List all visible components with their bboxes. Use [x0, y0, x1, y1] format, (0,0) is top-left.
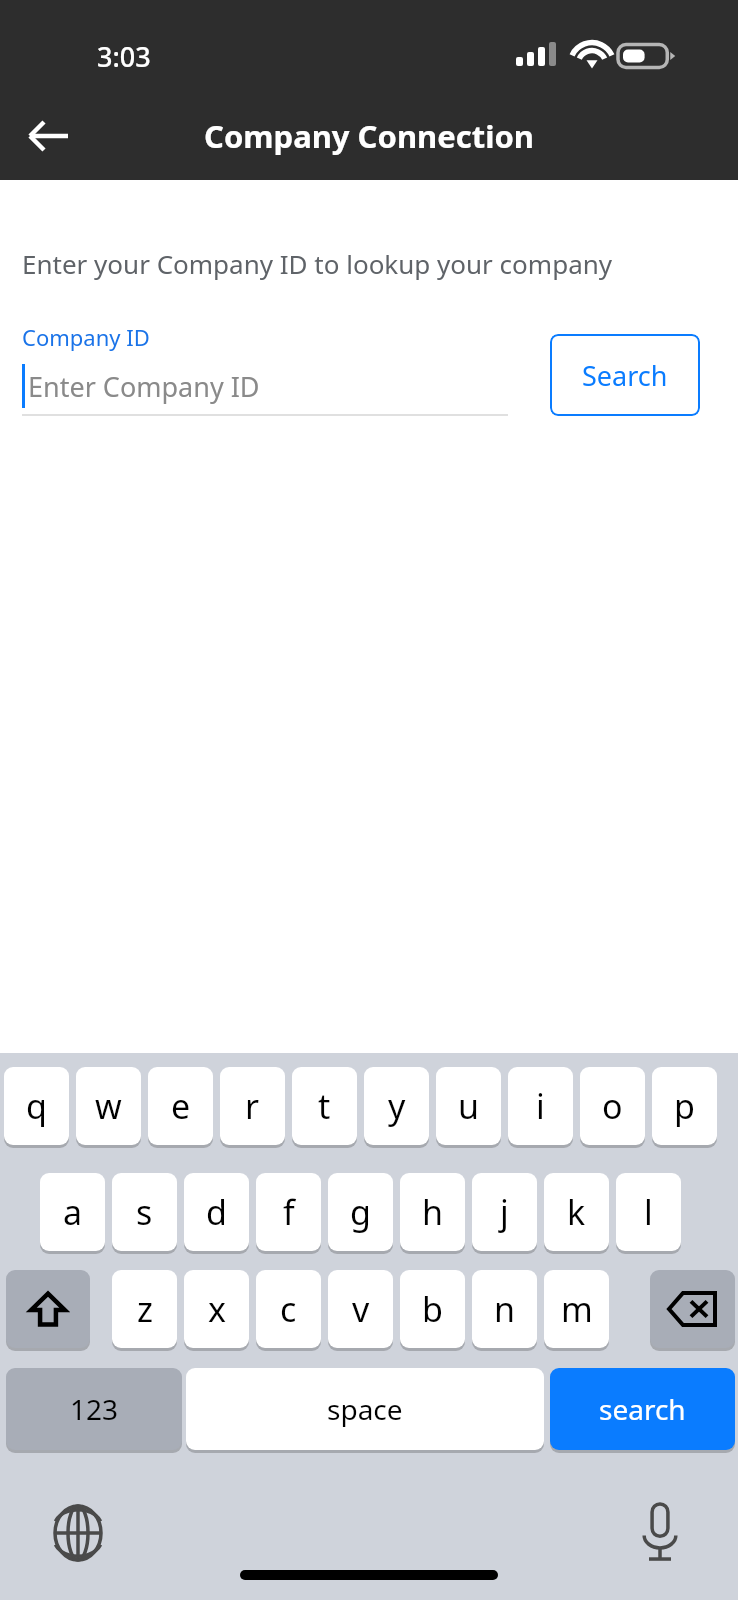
- button[interactable]: r: [220, 1067, 285, 1145]
- button[interactable]: s: [112, 1173, 177, 1251]
- staticText: v: [352, 1286, 370, 1332]
- button[interactable]: e: [148, 1067, 213, 1145]
- button[interactable]: l: [616, 1173, 681, 1251]
- button[interactable]: Change keyboard: [38, 1493, 118, 1573]
- staticText: h: [422, 1189, 444, 1235]
- button[interactable]: o: [580, 1067, 645, 1145]
- button[interactable]: q: [4, 1067, 69, 1145]
- button[interactable]: g: [328, 1173, 393, 1251]
- staticText: q: [26, 1083, 47, 1129]
- button[interactable]: a: [40, 1173, 105, 1251]
- button[interactable]: Back: [10, 92, 88, 180]
- button[interactable]: h: [400, 1173, 465, 1251]
- staticText: y: [388, 1083, 406, 1129]
- button[interactable]: u: [436, 1067, 501, 1145]
- staticText: space: [327, 1390, 403, 1428]
- button[interactable]: Search: [550, 334, 700, 416]
- staticText: n: [494, 1286, 516, 1332]
- staticText: e: [171, 1083, 191, 1129]
- staticText: r: [245, 1083, 260, 1129]
- button[interactable]: t: [292, 1067, 357, 1145]
- staticText: s: [136, 1189, 153, 1235]
- staticText: 123: [70, 1390, 119, 1428]
- staticText: Company Connection: [204, 115, 534, 157]
- button[interactable]: Delete: [650, 1270, 735, 1348]
- button[interactable]: i: [508, 1067, 573, 1145]
- staticText: f: [283, 1189, 295, 1235]
- button[interactable]: m: [544, 1270, 609, 1348]
- button[interactable]: j: [472, 1173, 537, 1251]
- staticText: Search: [582, 357, 668, 394]
- staticText: d: [206, 1189, 227, 1235]
- button[interactable]: search: [550, 1368, 735, 1450]
- staticText: o: [602, 1083, 623, 1129]
- button[interactable]: 123: [6, 1368, 182, 1450]
- button[interactable]: z: [112, 1270, 177, 1348]
- staticText: Enter your Company ID to lookup your com…: [22, 246, 613, 281]
- staticText: Enter Company ID: [28, 368, 260, 405]
- staticText: j: [500, 1189, 509, 1235]
- button[interactable]: v: [328, 1270, 393, 1348]
- staticText: a: [63, 1189, 83, 1235]
- staticText: k: [567, 1189, 586, 1235]
- staticText: t: [318, 1083, 331, 1129]
- button[interactable]: f: [256, 1173, 321, 1251]
- staticText: z: [137, 1286, 153, 1332]
- staticText: x: [208, 1286, 226, 1332]
- button[interactable]: Dictate: [620, 1493, 700, 1573]
- button[interactable]: n: [472, 1270, 537, 1348]
- staticText: b: [422, 1286, 443, 1332]
- staticText: 3:03: [97, 38, 151, 75]
- button[interactable]: Shift: [6, 1270, 90, 1348]
- staticText: w: [95, 1083, 122, 1129]
- staticText: l: [644, 1189, 653, 1235]
- button[interactable]: w: [76, 1067, 141, 1145]
- staticText: u: [458, 1083, 480, 1129]
- button[interactable]: Enter Company ID: [22, 360, 508, 416]
- button[interactable]: y: [364, 1067, 429, 1145]
- staticText: m: [561, 1286, 593, 1332]
- button[interactable]: d: [184, 1173, 249, 1251]
- button[interactable]: b: [400, 1270, 465, 1348]
- staticText: i: [536, 1083, 545, 1129]
- button[interactable]: x: [184, 1270, 249, 1348]
- staticText: g: [350, 1189, 371, 1235]
- staticText: c: [280, 1286, 297, 1332]
- button[interactable]: c: [256, 1270, 321, 1348]
- button[interactable]: k: [544, 1173, 609, 1251]
- staticText: p: [674, 1083, 695, 1129]
- button[interactable]: p: [652, 1067, 717, 1145]
- button[interactable]: space: [186, 1368, 544, 1450]
- staticText: search: [599, 1390, 686, 1428]
- staticText: Company ID: [22, 322, 150, 352]
